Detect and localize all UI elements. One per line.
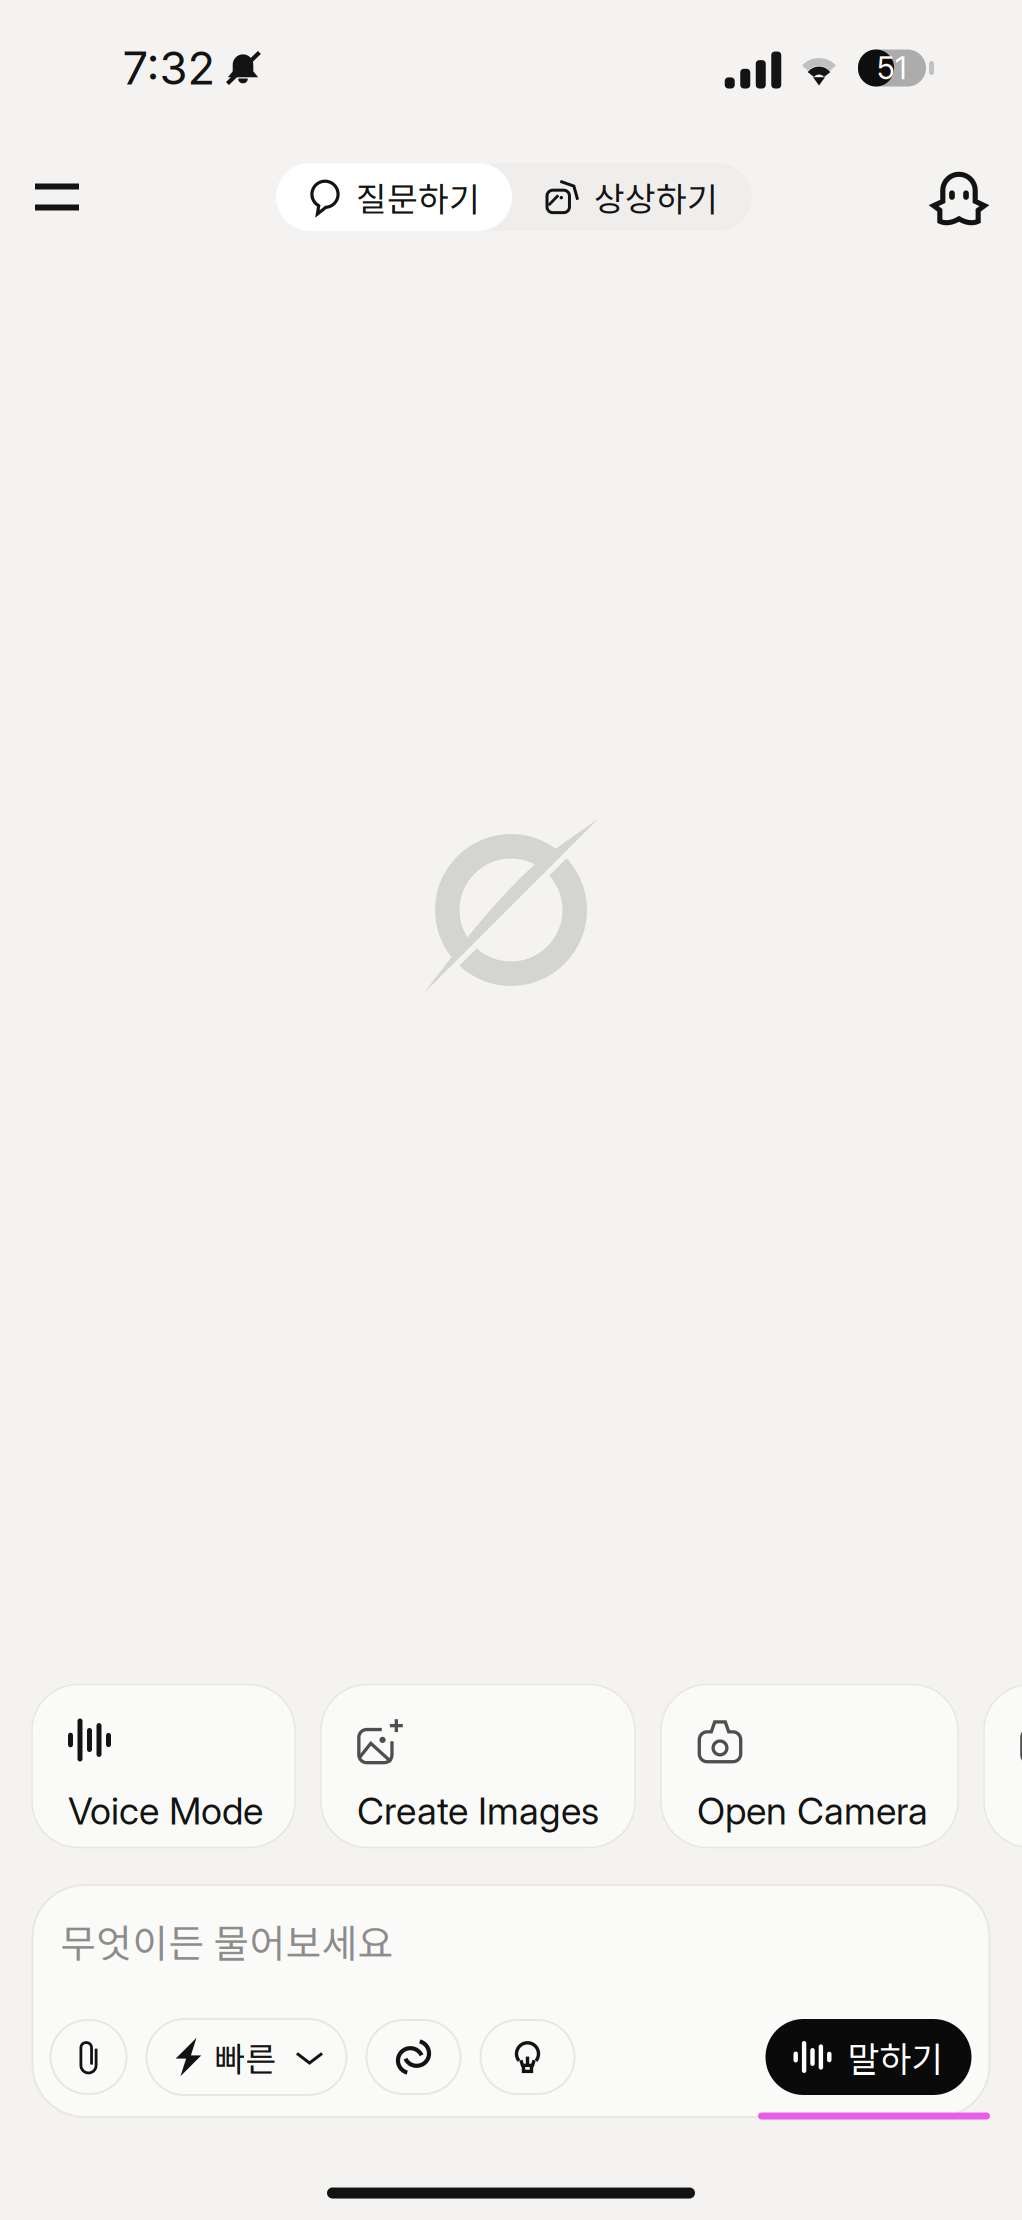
button[interactable]: Edit Image <box>984 1684 1022 1847</box>
button[interactable]: Profile <box>913 151 1005 243</box>
staticText: 말하기 <box>847 2032 943 2082</box>
button[interactable]: Think <box>480 2020 574 2094</box>
staticText: Voice Mode <box>68 1788 263 1833</box>
staticText: 무엇이든 물어보세요 <box>60 1913 393 1969</box>
staticText: 51 <box>877 49 907 86</box>
staticText: 질문하기 <box>356 173 480 221</box>
button[interactable]: DeepSearch <box>366 2020 460 2094</box>
button[interactable]: Menu <box>11 151 103 243</box>
button[interactable]: Attach <box>50 2020 126 2094</box>
staticText: 7:32 <box>122 41 215 95</box>
staticText: Create Images <box>357 1788 599 1833</box>
staticText: 빠른 <box>214 2033 276 2081</box>
staticText: 상상하기 <box>594 173 718 221</box>
staticText: Open Camera <box>697 1788 928 1833</box>
button[interactable]: Create Images <box>321 1684 635 1847</box>
button[interactable]: Voice Mode <box>32 1684 295 1847</box>
button[interactable]: 질문하기 <box>276 163 512 231</box>
button[interactable]: 상상하기 <box>512 163 752 231</box>
button[interactable]: 말하기 <box>765 2019 971 2095</box>
button[interactable]: 빠른 <box>146 2019 346 2095</box>
button[interactable]: Open Camera <box>661 1684 958 1847</box>
